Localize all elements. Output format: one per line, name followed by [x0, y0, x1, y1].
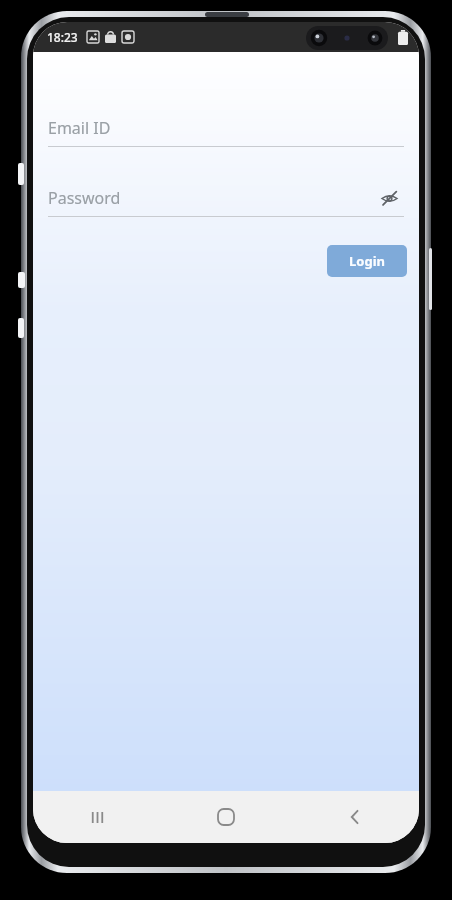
button[interactable]: Back: [290, 791, 419, 843]
button[interactable]: Home: [161, 791, 290, 843]
button[interactable]: Recent apps: [33, 791, 161, 843]
button[interactable]: Email ID: [48, 110, 404, 147]
button[interactable]: Login: [327, 245, 407, 277]
staticText: Password: [48, 187, 121, 209]
staticText: Login: [349, 252, 385, 270]
button[interactable]: Show password: [374, 183, 404, 213]
staticText: 18:23: [47, 29, 78, 45]
button[interactable]: Password: [48, 180, 404, 217]
staticText: Email ID: [48, 117, 111, 139]
